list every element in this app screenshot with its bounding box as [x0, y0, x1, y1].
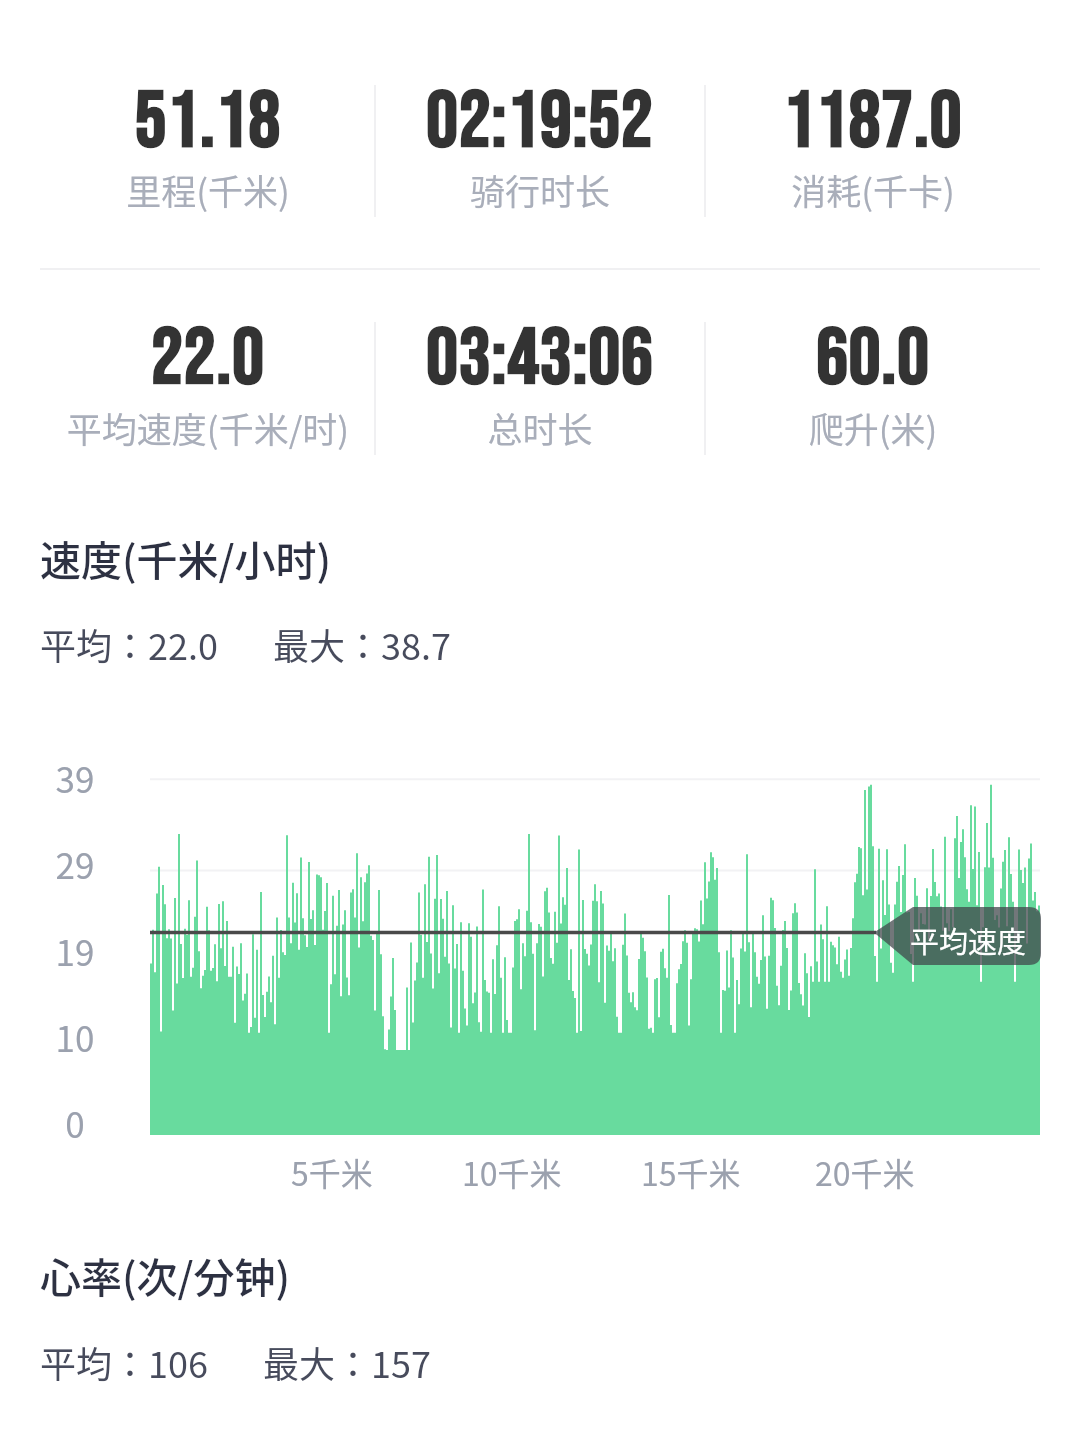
- staticText: 1187.0: [706, 75, 1040, 170]
- staticText: 51.18: [41, 75, 375, 170]
- button[interactable]: 03:43:06: [373, 312, 707, 454]
- staticText: 平均：22.0: [40, 618, 218, 670]
- staticText: 最大：38.7: [273, 618, 451, 670]
- staticText: 平均速度: [910, 919, 1027, 961]
- staticText: 最大：157: [263, 1336, 431, 1388]
- staticText: 20千米: [815, 1149, 915, 1195]
- staticText: 39: [30, 752, 120, 803]
- staticText: 19: [30, 925, 120, 976]
- staticText: 02:19:52: [373, 75, 707, 170]
- staticText: 平均：106: [40, 1336, 208, 1388]
- staticText: 总时长: [373, 402, 707, 453]
- button[interactable]: 22.0: [41, 312, 375, 454]
- button[interactable]: 1187.0: [706, 75, 1040, 216]
- button[interactable]: 51.18: [41, 75, 375, 216]
- staticText: 心率(次/分钟): [40, 1245, 291, 1304]
- staticText: 爬升(米): [706, 402, 1040, 453]
- staticText: 5千米: [291, 1149, 373, 1195]
- staticText: 10千米: [462, 1149, 562, 1195]
- staticText: 03:43:06: [373, 312, 707, 407]
- staticText: 里程(千米): [41, 164, 375, 215]
- button[interactable]: 60.0: [706, 312, 1040, 454]
- staticText: 22.0: [41, 312, 375, 407]
- staticText: 15千米: [641, 1149, 741, 1195]
- staticText: 60.0: [706, 312, 1040, 407]
- staticText: 10: [30, 1011, 120, 1062]
- staticText: 29: [30, 838, 120, 889]
- button[interactable]: 平均速度: [874, 907, 1041, 965]
- staticText: 消耗(千卡): [706, 164, 1040, 215]
- staticText: 速度(千米/小时): [40, 528, 332, 587]
- staticText: 平均速度(千米/时): [41, 402, 375, 453]
- staticText: 骑行时长: [373, 164, 707, 215]
- button[interactable]: 02:19:52: [373, 75, 707, 216]
- staticText: 0: [30, 1097, 120, 1148]
